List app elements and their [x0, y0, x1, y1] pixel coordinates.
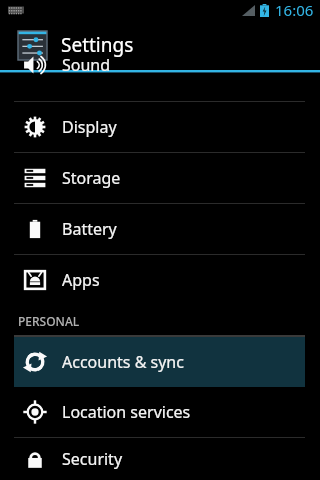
button[interactable]: Security [14, 438, 305, 480]
button[interactable]: Accounts & sync [14, 337, 305, 387]
button[interactable]: Location services [14, 387, 305, 437]
staticText: Location services [62, 401, 191, 423]
staticText: Sound [62, 54, 111, 76]
staticText: PERSONAL [18, 313, 80, 329]
button[interactable]: Storage [14, 153, 305, 203]
staticText: Security [62, 448, 123, 470]
staticText: Apps [62, 269, 100, 291]
staticText: Settings [61, 32, 134, 58]
button[interactable]: Display [14, 102, 305, 152]
button[interactable]: Battery [14, 204, 305, 254]
staticText: Display [62, 116, 117, 138]
button[interactable]: Sound [14, 51, 305, 79]
staticText: Battery [62, 218, 117, 240]
staticText: 16:06 [275, 0, 314, 20]
staticText: Storage [62, 167, 121, 189]
staticText: Accounts & sync [62, 351, 184, 373]
button[interactable]: Apps [14, 255, 305, 305]
